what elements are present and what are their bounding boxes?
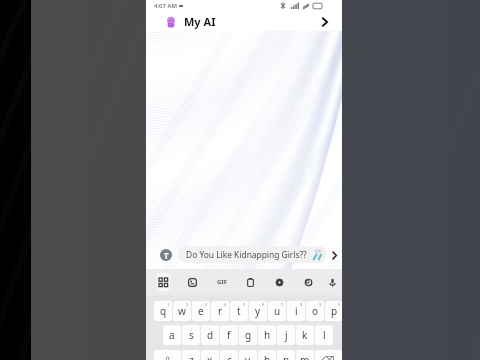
button[interactable]: i	[287, 301, 305, 321]
staticText: l	[323, 328, 326, 342]
button[interactable]: ⌫	[315, 350, 342, 360]
staticText: My AI	[184, 14, 216, 29]
staticText: n	[283, 353, 290, 360]
staticText: u	[274, 304, 281, 318]
button[interactable]: Apps	[149, 269, 178, 295]
button[interactable]: Theme	[294, 269, 323, 295]
staticText: c	[227, 353, 232, 360]
staticText: w	[178, 304, 186, 318]
button[interactable]: s	[182, 325, 200, 345]
staticText: d	[207, 328, 214, 342]
button[interactable]: m	[296, 350, 314, 360]
staticText: 5	[243, 302, 246, 307]
staticText: j	[285, 328, 288, 342]
button[interactable]: Voice input	[323, 269, 342, 295]
staticText: p	[331, 304, 338, 318]
button[interactable]: q	[154, 301, 172, 321]
button[interactable]: ⇧	[154, 350, 181, 360]
staticText: Do You Like Kidnapping Girls??	[186, 249, 307, 260]
button[interactable]: l	[315, 325, 333, 345]
staticText: a	[169, 328, 175, 342]
staticText: ⌫	[322, 355, 335, 360]
staticText: 1	[167, 302, 170, 307]
staticText: y	[255, 304, 261, 318]
button[interactable]: b	[258, 350, 276, 360]
staticText: o	[312, 304, 319, 318]
staticText: q	[160, 304, 167, 318]
staticText: 3	[205, 302, 208, 307]
staticText: b	[264, 353, 271, 360]
button[interactable]: Do You Like Kidnapping Girls??	[178, 246, 327, 263]
staticText: h	[264, 328, 271, 342]
staticText: t	[237, 304, 241, 318]
staticText: 4:07 AM	[154, 2, 177, 10]
button[interactable]: n	[277, 350, 295, 360]
button[interactable]: e	[192, 301, 210, 321]
button[interactable]: Settings	[265, 269, 294, 295]
staticText: g	[245, 328, 252, 342]
staticText: 9	[319, 302, 322, 307]
staticText: v	[245, 353, 251, 360]
button[interactable]: Clipboard	[236, 269, 265, 295]
button[interactable]: GIF	[207, 269, 236, 295]
staticText: ⇧	[164, 355, 172, 360]
staticText: GIF	[217, 278, 227, 286]
button[interactable]: x	[201, 350, 219, 360]
staticText: m	[300, 353, 310, 360]
button[interactable]: g	[239, 325, 257, 345]
button[interactable]: f	[220, 325, 238, 345]
button[interactable]: w	[173, 301, 191, 321]
staticText: 8	[300, 302, 303, 307]
button[interactable]: v	[239, 350, 257, 360]
button[interactable]: c	[220, 350, 238, 360]
button[interactable]: h	[258, 325, 276, 345]
staticText: x	[207, 353, 213, 360]
button[interactable]: u	[268, 301, 286, 321]
staticText: f	[227, 328, 231, 342]
button[interactable]: y	[249, 301, 267, 321]
button[interactable]: Next	[322, 11, 342, 32]
staticText: r	[218, 304, 223, 318]
staticText: 0	[338, 302, 341, 307]
button[interactable]: Stickers	[178, 269, 207, 295]
button[interactable]: j	[277, 325, 295, 345]
staticText: e	[198, 304, 204, 318]
staticText: 6	[262, 302, 265, 307]
button[interactable]: a	[163, 325, 181, 345]
staticText: z	[189, 353, 194, 360]
staticText: s	[189, 328, 194, 342]
button[interactable]: z	[182, 350, 200, 360]
staticText: 4	[224, 302, 227, 307]
button[interactable]: r	[211, 301, 229, 321]
button[interactable]: More	[332, 249, 342, 261]
staticText: i	[295, 304, 298, 318]
staticText: T	[164, 250, 169, 261]
button[interactable]: d	[201, 325, 219, 345]
button[interactable]: t	[230, 301, 248, 321]
button[interactable]: o	[306, 301, 324, 321]
button[interactable]: p	[325, 301, 342, 321]
button[interactable]: k	[296, 325, 314, 345]
staticText: 7	[281, 302, 284, 307]
staticText: 2	[186, 302, 189, 307]
staticText: k	[302, 328, 308, 342]
